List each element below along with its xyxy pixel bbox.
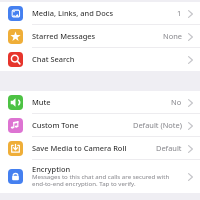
staticText: Encryption [32,165,71,174]
staticText: None [163,32,182,41]
staticText: Default (Note) [133,121,182,130]
button[interactable]: Save Media to Camera Roll [0,137,200,160]
staticText: Chat Search [32,55,75,64]
staticText: 1 [177,9,182,18]
button[interactable]: Custom Tone [0,114,200,137]
other: Open [188,122,193,130]
other: Open [188,33,193,41]
button[interactable]: Chat Search [0,48,200,71]
button[interactable]: Mute [0,91,200,114]
staticText: Custom Tone [32,121,79,130]
button[interactable]: Media, Links, and Docs [0,2,200,25]
staticText: Media, Links, and Docs [32,9,114,18]
other: Open [188,10,193,18]
staticText: Starred Messages [32,32,96,41]
button[interactable]: Encryption [0,160,200,193]
button[interactable]: Starred Messages [0,25,200,48]
other: Open [188,145,193,153]
staticText: Save Media to Camera Roll [32,144,127,153]
staticText: Default [156,144,182,153]
other: Open [188,99,193,107]
other: Open [188,173,193,181]
staticText: Mute [32,98,51,107]
staticText: Messages to this chat and calls are secu… [32,174,178,188]
other: Open [188,56,193,64]
staticText: No [171,98,182,107]
